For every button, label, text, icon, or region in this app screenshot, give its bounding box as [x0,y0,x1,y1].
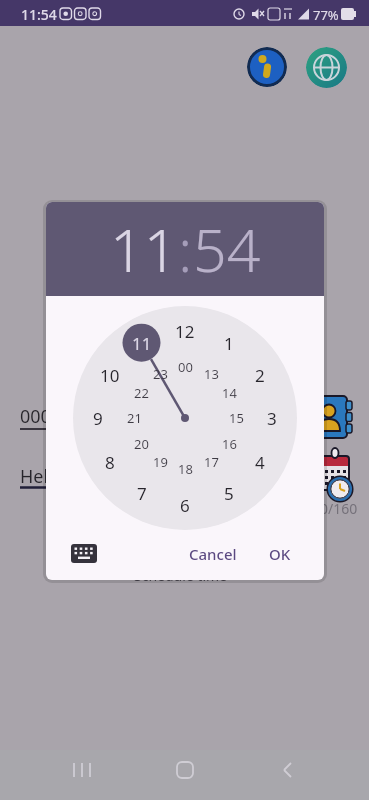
button[interactable]: Cancel [185,536,241,572]
staticText: 20 [134,435,149,453]
staticText: 12 [175,320,195,342]
staticText: : [178,209,193,289]
staticText: 19 [153,453,168,471]
staticText: 11 [132,332,152,354]
staticText: 0/160 [320,499,358,518]
staticText: 000 [20,404,51,429]
button[interactable] [71,544,97,564]
staticText: 23 [153,365,168,383]
staticText: 21 [127,409,142,427]
staticText: 17 [204,453,219,471]
staticText: Cancel [189,544,237,564]
staticText: 14 [222,384,237,402]
staticText: 1 [224,332,234,354]
staticText: 2 [255,364,265,386]
staticText: 77% [313,6,339,24]
staticText: 22 [134,384,149,402]
staticText: OK [269,544,291,564]
staticText: 9 [93,407,103,429]
staticText: Hel [20,464,49,489]
button[interactable] [306,47,347,88]
button[interactable] [247,47,287,87]
staticText: 18 [178,460,193,478]
staticText: 11 [110,209,178,289]
staticText: 00 [178,358,193,376]
staticText: 7 [137,482,147,504]
staticText: 3 [267,407,277,429]
staticText: 4 [255,451,265,473]
staticText: 13 [204,365,219,383]
staticText: Schedule time [134,566,228,585]
button[interactable] [268,750,308,796]
staticText: 8 [105,451,115,473]
staticText: 5 [224,482,234,504]
staticText: 54 [193,209,261,289]
staticText: 15 [229,409,244,427]
button[interactable] [62,752,102,798]
staticText: 10 [100,364,120,386]
staticText: 11:54 [21,5,57,24]
button[interactable]: OK [262,536,298,572]
staticText: 6 [180,494,190,516]
staticText: 16 [222,435,237,453]
button[interactable] [165,750,205,796]
